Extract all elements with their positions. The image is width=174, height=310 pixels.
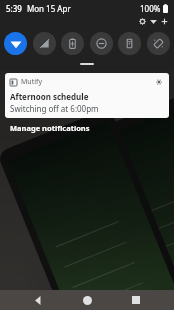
- button[interactable]: Flashlight: [118, 32, 141, 55]
- staticText: Switching off at 6:00pm: [10, 103, 99, 114]
- button[interactable]: Recent apps: [125, 290, 147, 310]
- button[interactable]: Manage notifications: [0, 118, 174, 138]
- button[interactable]: Add user: [161, 18, 168, 25]
- staticText: 5:39: [6, 3, 22, 14]
- staticText: 100%: [140, 3, 161, 14]
- button[interactable]: Cast screen: [33, 32, 56, 55]
- button[interactable]: Auto rotate: [147, 32, 170, 55]
- button[interactable]: Back: [27, 290, 49, 310]
- button[interactable]: Home: [76, 290, 98, 310]
- button[interactable]: Mutify: [5, 73, 169, 118]
- staticText: Mutify: [21, 77, 42, 87]
- staticText: Afternoon schedule: [10, 91, 89, 102]
- button[interactable]: Wi-Fi: [4, 32, 27, 55]
- button[interactable]: Battery Saver: [61, 32, 84, 55]
- button[interactable]: Expand notification: [154, 77, 164, 87]
- button[interactable]: Settings: [139, 18, 146, 25]
- staticText: Manage notifications: [10, 123, 90, 133]
- button[interactable]: Do Not Disturb: [90, 32, 113, 55]
- staticText: Mon 15 Apr: [27, 3, 71, 14]
